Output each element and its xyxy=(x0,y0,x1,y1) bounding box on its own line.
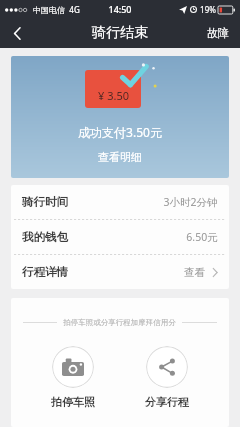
staticText: 骑行时间 xyxy=(22,195,68,209)
staticText: 拍停车照或分享行程加摩拜信用分 xyxy=(63,318,176,327)
staticText: ¥ 3.50 xyxy=(98,88,129,103)
staticText: 19% xyxy=(200,4,216,15)
staticText: 中国电信 xyxy=(33,5,65,15)
staticText: 拍停车照 xyxy=(51,395,95,409)
staticText: 4G xyxy=(69,4,80,15)
staticText: 查看明细 xyxy=(98,150,142,164)
button[interactable]: 故障 xyxy=(196,18,240,48)
staticText: 骑行结束 xyxy=(92,24,148,42)
staticText: 3小时2分钟 xyxy=(163,195,218,209)
button[interactable]: Take parking photo xyxy=(47,342,99,413)
staticText: 行程详情 xyxy=(22,265,68,279)
staticText: 故障 xyxy=(207,26,229,40)
staticText: 14:50 xyxy=(108,3,132,15)
button[interactable]: 行程详情 xyxy=(11,255,229,289)
staticText: 6.50元 xyxy=(186,230,218,244)
staticText: 成功支付3.50元 xyxy=(78,124,162,140)
staticText: 我的钱包 xyxy=(22,230,68,244)
button[interactable]: 查看明细 xyxy=(86,146,154,168)
button[interactable]: 骑行时间 xyxy=(11,185,229,219)
button[interactable]: Back xyxy=(0,18,34,48)
staticText: 查看 xyxy=(184,266,205,279)
staticText: 分享行程 xyxy=(145,395,189,409)
button[interactable]: 我的钱包 xyxy=(11,220,229,254)
button[interactable]: Share trip xyxy=(141,342,193,413)
